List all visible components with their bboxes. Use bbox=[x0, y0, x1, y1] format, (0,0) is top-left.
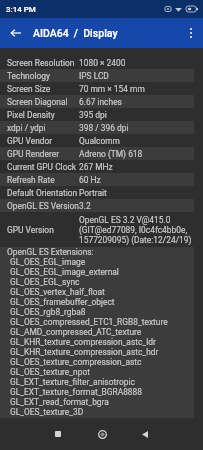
staticText: 267 MHz bbox=[79, 162, 113, 172]
staticText: 398 / 396 dpi bbox=[79, 123, 129, 133]
staticText: Adreno (TM) 618 bbox=[79, 149, 143, 159]
staticText: Portrait bbox=[79, 188, 107, 198]
button[interactable]: Technology bbox=[0, 69, 203, 82]
staticText: GPU Vendor bbox=[7, 136, 53, 146]
staticText: 3.2 bbox=[79, 201, 91, 211]
button[interactable]: Pixel Density bbox=[0, 108, 203, 121]
staticText: GL_OES_vertex_half_float bbox=[10, 287, 105, 297]
staticText: Current GPU Clock bbox=[7, 162, 77, 172]
staticText: OpenGL ES Version bbox=[7, 201, 79, 211]
staticText: 3:14 PM bbox=[6, 5, 36, 14]
staticText: GPU Renderer bbox=[7, 149, 60, 159]
staticText: OpenGL ES 3.2 V@415.0 bbox=[79, 215, 171, 225]
button[interactable]: Screen Size bbox=[0, 82, 203, 95]
staticText: GL_OES_EGL_image bbox=[10, 257, 86, 267]
staticText: GL_EXT_read_format_bgra bbox=[10, 397, 109, 407]
button[interactable]: Refresh Rate bbox=[0, 173, 203, 186]
staticText: 6.67 inches bbox=[79, 97, 122, 107]
staticText: 395 dpi bbox=[79, 110, 107, 120]
staticText: GL_AMD_compressed_ATC_texture bbox=[10, 327, 142, 337]
staticText: Screen Diagonal bbox=[7, 97, 68, 107]
button[interactable]: Recent apps bbox=[48, 424, 68, 444]
staticText: Pixel Density bbox=[7, 110, 55, 120]
button[interactable]: GPU Version bbox=[0, 212, 203, 247]
staticText: AIDA64 / Display bbox=[33, 27, 118, 39]
button[interactable]: Back bbox=[135, 424, 155, 444]
button[interactable]: GPU Renderer bbox=[0, 147, 203, 160]
staticText: GPU Version bbox=[7, 225, 54, 235]
staticText: Qualcomm bbox=[79, 136, 120, 146]
button[interactable]: Screen Resolution bbox=[0, 56, 203, 69]
button[interactable]: OpenGL ES Version bbox=[0, 199, 203, 212]
staticText: (GIT@ed77089, I0c4fc4bb0e, bbox=[79, 225, 188, 235]
staticText: GL_OES_texture_npot bbox=[10, 367, 90, 377]
button[interactable]: Default Orientation bbox=[0, 186, 203, 199]
staticText: GL_EXT_texture_format_BGRA8888 bbox=[10, 387, 143, 397]
staticText: GL_OES_EGL_image_external bbox=[10, 267, 119, 277]
staticText: 1080 × 2400 bbox=[79, 58, 126, 68]
staticText: 1577209095) (Date:12/24/19) bbox=[79, 235, 192, 245]
button[interactable]: More options bbox=[179, 21, 203, 45]
staticText: OpenGL ES Extensions: bbox=[7, 247, 94, 257]
button[interactable]: GPU Vendor bbox=[0, 134, 203, 147]
staticText: GL_OES_compressed_ETC1_RGB8_texture bbox=[10, 317, 168, 327]
staticText: GL_OES_texture_3D bbox=[10, 407, 84, 417]
staticText: Refresh Rate bbox=[7, 175, 55, 185]
button[interactable]: Navigate up bbox=[3, 21, 27, 45]
staticText: GL_OES_framebuffer_object bbox=[10, 297, 115, 307]
button[interactable]: Screen Diagonal bbox=[0, 95, 203, 108]
staticText: Default Orientation bbox=[7, 188, 78, 198]
staticText: GL_KHR_texture_compression_astc_ldr bbox=[10, 337, 156, 347]
staticText: GL_KHR_texture_compression_astc_hdr bbox=[10, 347, 159, 357]
button[interactable]: Current GPU Clock bbox=[0, 160, 203, 173]
staticText: GL_EXT_texture_filter_anisotropic bbox=[10, 377, 135, 387]
staticText: xdpi / ydpi bbox=[7, 123, 46, 133]
button[interactable]: Home bbox=[92, 424, 112, 444]
staticText: GL_OES_texture_compression_astc bbox=[10, 357, 142, 367]
staticText: GL_OES_EGL_sync bbox=[10, 277, 80, 287]
staticText: GL_OES_rgb8_rgba8 bbox=[10, 307, 86, 317]
staticText: 70 mm × 154 mm bbox=[79, 84, 145, 94]
staticText: 60 Hz bbox=[79, 175, 101, 185]
staticText: IPS LCD bbox=[79, 71, 109, 81]
button[interactable]: xdpi / ydpi bbox=[0, 121, 203, 134]
button[interactable]: OpenGL ES Extensions: bbox=[0, 247, 203, 418]
staticText: Technology bbox=[7, 71, 50, 81]
staticText: Screen Resolution bbox=[7, 58, 75, 68]
staticText: Screen Size bbox=[7, 84, 51, 94]
